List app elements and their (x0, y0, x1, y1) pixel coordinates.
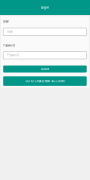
staticText: Password (7, 53, 19, 57)
button[interactable]: GO TO CREATE NEW ACCOUNT (3, 76, 87, 86)
staticText: Login (41, 6, 49, 9)
staticText: LOGIN (41, 67, 49, 71)
staticText: Email (3, 20, 9, 23)
staticText: GO TO CREATE NEW ACCOUNT (25, 79, 64, 83)
staticText: Email (7, 30, 13, 33)
staticText: Password (3, 44, 15, 47)
button[interactable]: LOGIN (3, 65, 87, 72)
